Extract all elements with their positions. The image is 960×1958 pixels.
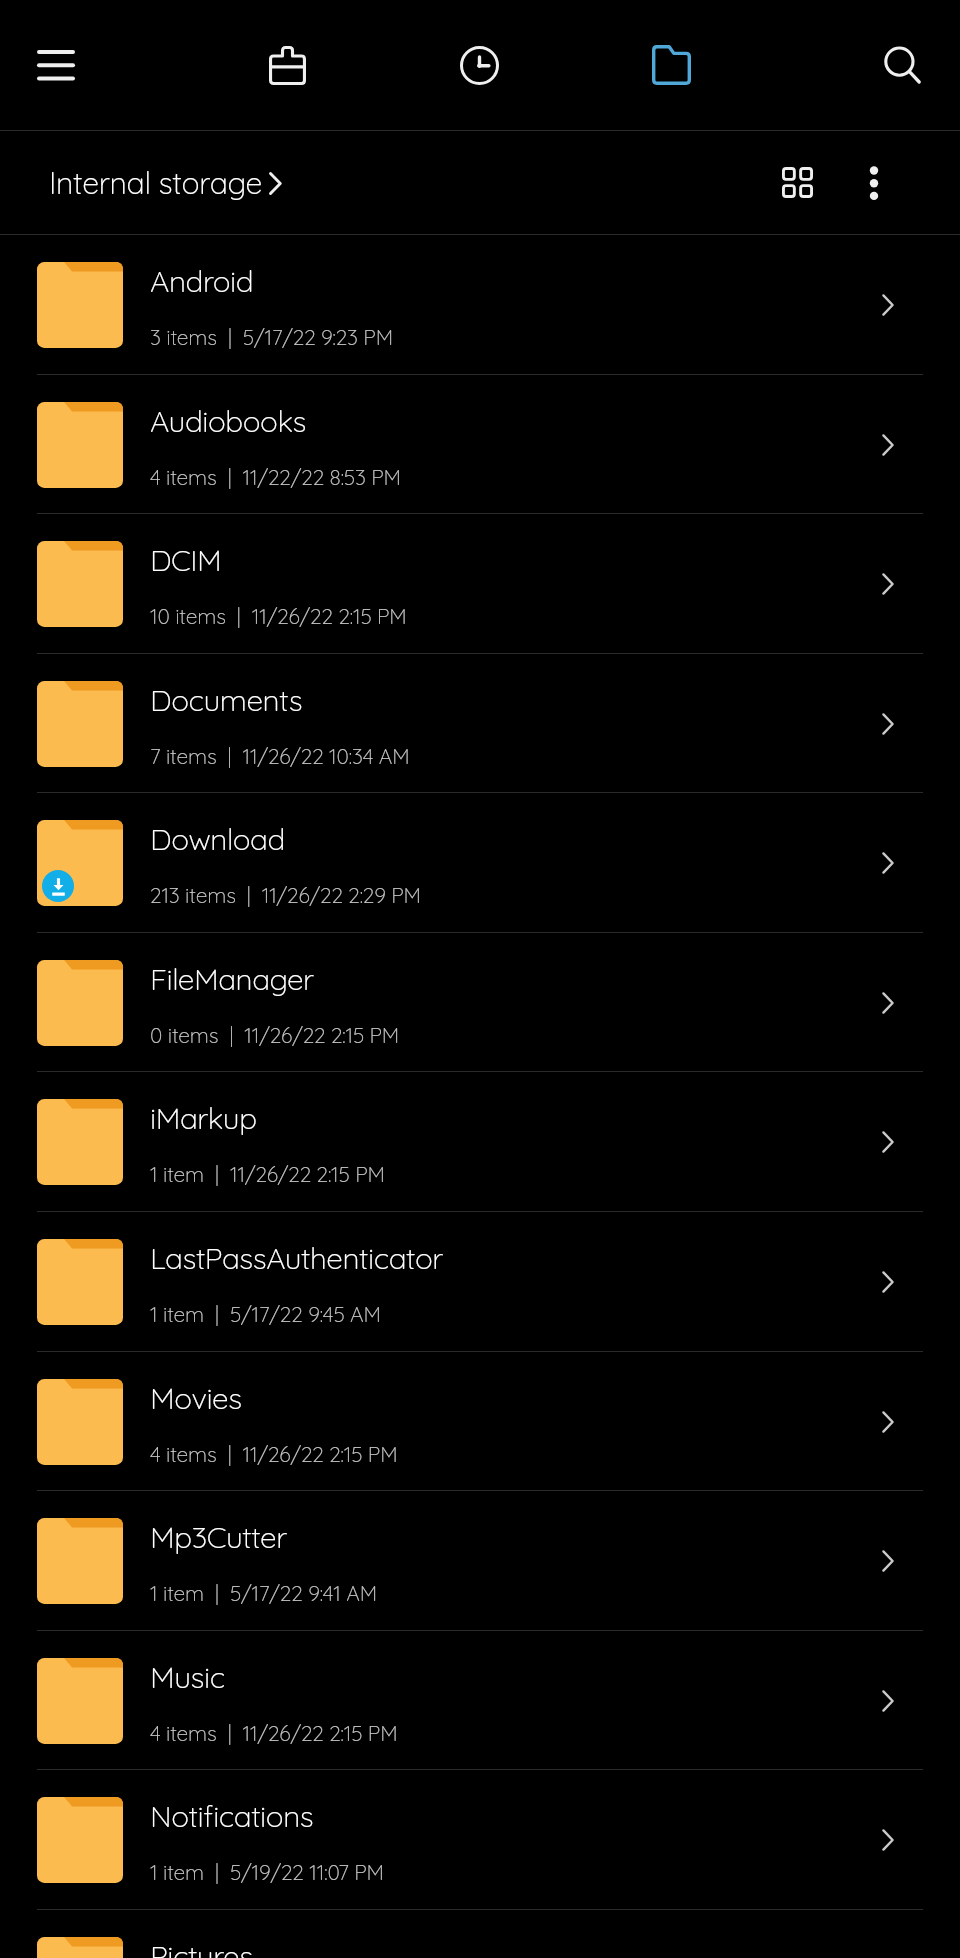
- staticText: Mp3Cutter: [150, 1518, 287, 1555]
- staticText: Pictures: [150, 1937, 253, 1958]
- button[interactable]: More options: [834, 143, 914, 223]
- staticText: Notifications: [150, 1797, 314, 1834]
- staticText: iMarkup: [150, 1099, 257, 1136]
- staticText: 3 items | 5/17/22 9:23 PM: [150, 324, 393, 350]
- button[interactable]: Mp3Cutter: [0, 1491, 960, 1631]
- staticText: Movies: [150, 1379, 242, 1416]
- button[interactable]: Movies: [0, 1352, 960, 1491]
- button[interactable]: Search: [858, 21, 946, 109]
- button[interactable]: Grid view: [757, 142, 837, 222]
- button[interactable]: Internal storage: [49, 164, 282, 202]
- button[interactable]: Clean up: [243, 21, 331, 109]
- staticText: 10 items | 11/26/22 2:15 PM: [150, 603, 407, 629]
- staticText: Download: [150, 820, 285, 857]
- button[interactable]: Pictures: [0, 1910, 960, 1958]
- staticText: 213 items | 11/26/22 2:29 PM: [150, 882, 421, 908]
- button[interactable]: Recent files: [435, 21, 523, 109]
- staticText: 1 item | 5/17/22 9:41 AM: [150, 1580, 378, 1606]
- staticText: Documents: [150, 681, 303, 718]
- button[interactable]: Music: [0, 1631, 960, 1770]
- button[interactable]: Download: [0, 793, 960, 933]
- staticText: 1 item | 11/26/22 2:15 PM: [150, 1161, 385, 1187]
- button[interactable]: LastPassAuthenticator: [0, 1212, 960, 1352]
- staticText: DCIM: [150, 541, 222, 578]
- staticText: FileManager: [150, 960, 314, 997]
- staticText: Music: [150, 1658, 225, 1695]
- staticText: 1 item | 5/17/22 9:45 AM: [150, 1301, 381, 1327]
- button[interactable]: Notifications: [0, 1770, 960, 1910]
- staticText: Internal storage: [49, 164, 263, 202]
- button[interactable]: Menu: [12, 21, 100, 109]
- staticText: 1 item | 5/19/22 11:07 PM: [150, 1859, 384, 1885]
- button[interactable]: Internal storage: [627, 21, 715, 109]
- staticText: 4 items | 11/26/22 2:15 PM: [150, 1441, 398, 1467]
- button[interactable]: iMarkup: [0, 1072, 960, 1212]
- staticText: Android: [150, 262, 254, 299]
- staticText: LastPassAuthenticator: [150, 1239, 443, 1276]
- button[interactable]: Android: [0, 235, 960, 375]
- staticText: Audiobooks: [150, 402, 306, 439]
- staticText: 4 items | 11/26/22 2:15 PM: [150, 1720, 398, 1746]
- staticText: 7 items | 11/26/22 10:34 AM: [150, 743, 410, 769]
- button[interactable]: Documents: [0, 654, 960, 793]
- button[interactable]: FileManager: [0, 933, 960, 1072]
- button[interactable]: DCIM: [0, 514, 960, 654]
- button[interactable]: Audiobooks: [0, 375, 960, 514]
- staticText: 4 items | 11/22/22 8:53 PM: [150, 464, 401, 490]
- staticText: 0 items | 11/26/22 2:15 PM: [150, 1022, 400, 1048]
